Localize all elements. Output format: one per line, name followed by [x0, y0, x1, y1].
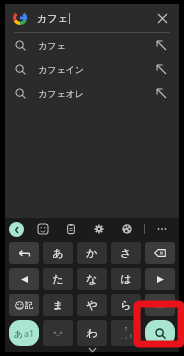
staticText: は [120, 272, 132, 286]
button[interactable]: Symbols [9, 294, 39, 316]
button[interactable]: Insert カフェ [153, 37, 169, 53]
button[interactable]: Cursor right [145, 268, 175, 290]
button[interactable]: Emoticons [43, 320, 73, 346]
staticText: ^_^ [53, 329, 63, 337]
button[interactable]: か [77, 242, 107, 264]
staticText: ? 、。! [120, 326, 132, 340]
button[interactable]: Hide keyboard [84, 348, 100, 352]
button[interactable]: Cursor left [9, 268, 39, 290]
button[interactable]: あ [43, 242, 73, 264]
staticText: か [86, 246, 98, 260]
button[interactable]: Insert カフェイン [153, 61, 169, 77]
staticText: わ [86, 326, 98, 340]
button[interactable]: Google [5, 4, 179, 32]
staticText: カフェ [38, 40, 153, 51]
button[interactable]: Clipboard [63, 221, 79, 237]
button[interactable]: Clear [153, 9, 171, 27]
button[interactable]: Back [9, 222, 24, 237]
button[interactable]: カフェ [5, 33, 179, 57]
staticText: a1 [24, 327, 35, 339]
button[interactable]: な [77, 268, 107, 290]
staticText: な [86, 272, 98, 286]
staticText: あ [52, 246, 64, 260]
button[interactable]: Punctuation [111, 320, 141, 346]
staticText: あ [14, 328, 24, 339]
button[interactable]: や [77, 294, 107, 316]
button[interactable]: Emoji [35, 221, 51, 237]
button[interactable]: さ [111, 242, 141, 264]
button[interactable]: カフェオレ [5, 81, 179, 105]
button[interactable]: ら [111, 294, 141, 316]
staticText: カフェオレ [38, 88, 153, 99]
button[interactable]: Switch to alphabet [9, 320, 39, 346]
staticText: 記 [25, 300, 33, 310]
staticText: カフェイン [38, 64, 153, 75]
button[interactable]: Settings [91, 221, 107, 237]
other: Google [13, 11, 27, 25]
button[interactable]: Space [145, 294, 175, 316]
button[interactable]: Backspace [145, 242, 175, 264]
staticText: た [52, 272, 64, 286]
button[interactable]: カフェイン [5, 57, 179, 81]
button[interactable]: Themes [119, 221, 135, 237]
button[interactable]: More options [154, 221, 170, 237]
staticText: カフェ [37, 12, 68, 25]
button[interactable]: Search [145, 320, 175, 346]
staticText: や [86, 298, 98, 312]
button[interactable]: は [111, 268, 141, 290]
staticText: ま [52, 298, 64, 312]
button[interactable]: ま [43, 294, 73, 316]
button[interactable]: た [43, 268, 73, 290]
button[interactable]: わ [77, 320, 107, 346]
staticText: ら [120, 298, 132, 312]
staticText: さ [120, 246, 132, 260]
button[interactable]: Insert カフェオレ [153, 85, 169, 101]
button[interactable]: Undo [9, 242, 39, 264]
